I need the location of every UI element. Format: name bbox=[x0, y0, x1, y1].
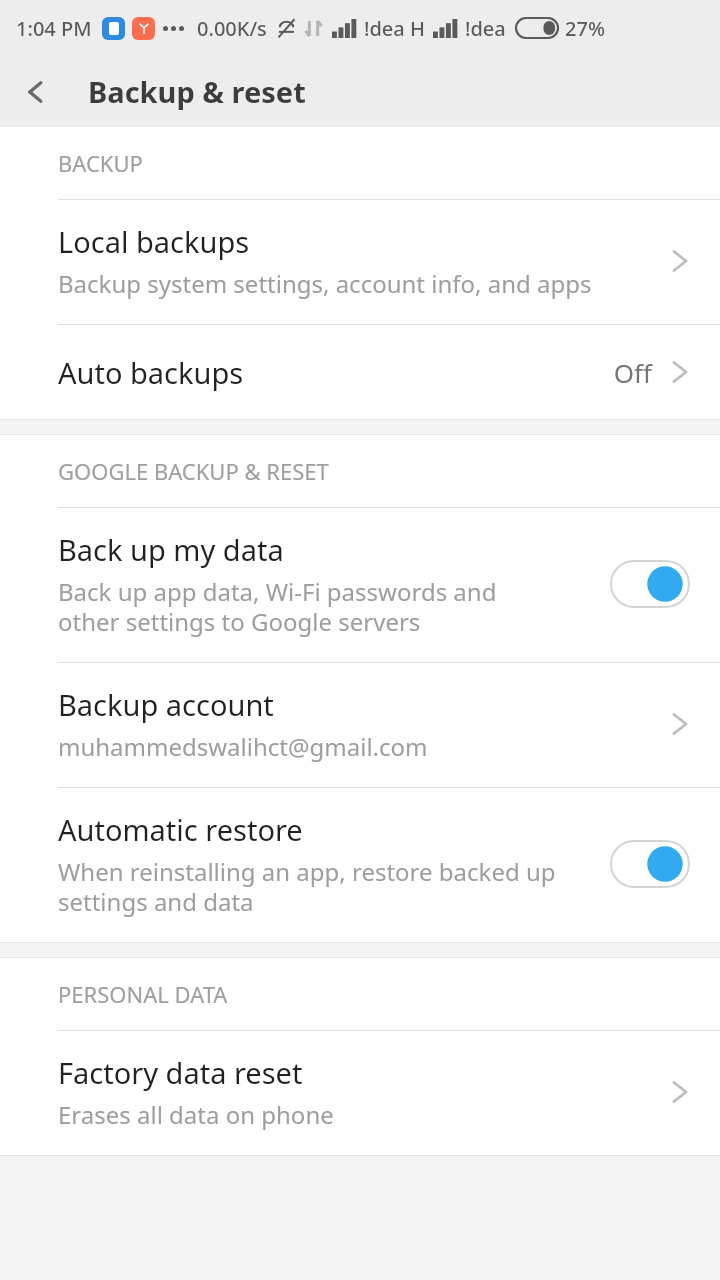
staticText: 0.00K/s bbox=[197, 15, 267, 42]
staticText: PERSONAL DATA bbox=[58, 979, 228, 1009]
button[interactable]: Toggle bbox=[610, 560, 690, 608]
staticText: When reinstalling an app, restore backed… bbox=[58, 855, 556, 918]
staticText: Back up app data, Wi-Fi passwords and ot… bbox=[58, 575, 497, 638]
staticText: GOOGLE BACKUP & RESET bbox=[58, 456, 329, 486]
staticText: Back up my data bbox=[58, 530, 284, 569]
staticText: !dea bbox=[465, 15, 506, 42]
button[interactable]: Factory data reset bbox=[0, 1031, 720, 1155]
staticText: Backup account bbox=[58, 685, 274, 724]
staticText: Off bbox=[613, 355, 652, 390]
button[interactable]: Auto backups bbox=[0, 325, 720, 419]
staticText: Auto backups bbox=[58, 353, 613, 392]
staticText: muhammedswalihct@gmail.com bbox=[58, 730, 428, 763]
staticText: 1:04 PM bbox=[16, 15, 92, 42]
staticText: !dea H bbox=[364, 15, 425, 42]
button[interactable]: Automatic restore bbox=[0, 788, 720, 942]
button[interactable]: Local backups bbox=[0, 200, 720, 324]
staticText: Local backups bbox=[58, 222, 250, 261]
staticText: Automatic restore bbox=[58, 810, 303, 849]
staticText: Factory data reset bbox=[58, 1053, 303, 1092]
staticText: BACKUP bbox=[58, 148, 143, 178]
staticText: Erases all data on phone bbox=[58, 1098, 334, 1131]
button[interactable]: Toggle bbox=[610, 840, 690, 888]
staticText: 27% bbox=[565, 15, 605, 42]
button[interactable]: Back bbox=[0, 56, 71, 127]
staticText: Backup & reset bbox=[88, 72, 306, 111]
staticText: Backup system settings, account info, an… bbox=[58, 267, 592, 300]
button[interactable]: Back up my data bbox=[0, 508, 720, 662]
button[interactable]: Backup account bbox=[0, 663, 720, 787]
